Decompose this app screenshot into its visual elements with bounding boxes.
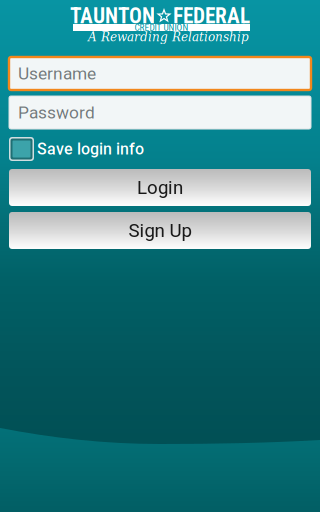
staticText: TAUNTON <box>70 3 155 28</box>
button[interactable]: Save login info <box>9 136 34 162</box>
button[interactable]: Login <box>9 169 311 206</box>
button[interactable]: Password <box>9 96 311 129</box>
staticText: Sign Up <box>128 220 191 241</box>
button[interactable]: Sign Up <box>9 212 311 249</box>
staticText: Save login info <box>37 140 144 158</box>
staticText: CREDIT UNION <box>134 22 188 33</box>
staticText: A Rewarding Relationship <box>88 30 249 44</box>
staticText: Password <box>18 102 95 123</box>
staticText: FEDERAL <box>173 3 250 28</box>
staticText: Username <box>18 63 96 84</box>
button[interactable]: Username <box>9 57 311 90</box>
staticText: Login <box>137 177 183 198</box>
